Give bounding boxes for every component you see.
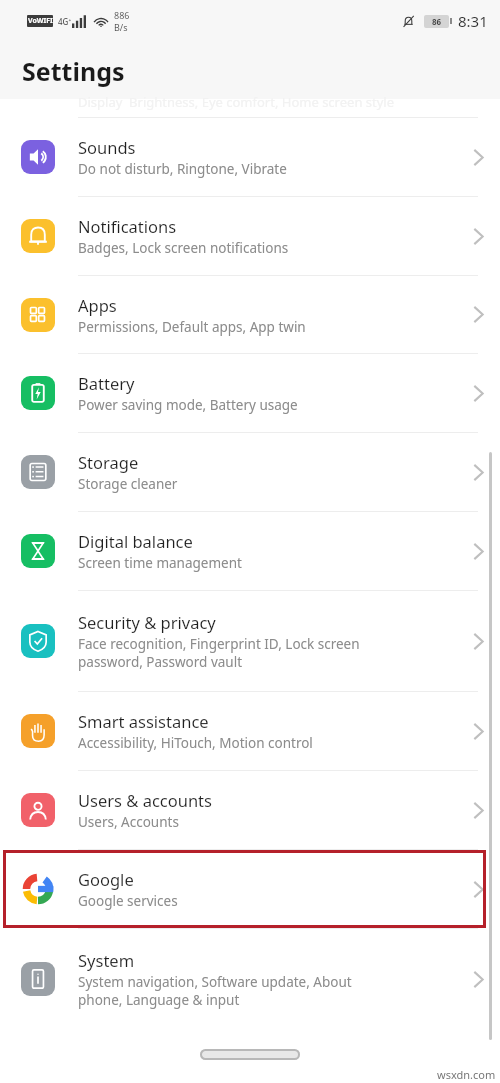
staticText: Apps xyxy=(78,294,117,316)
staticText: Badges, Lock screen notifications xyxy=(78,239,289,257)
staticText: 886 xyxy=(114,9,130,21)
staticText: Notifications xyxy=(78,215,177,237)
staticText: Display Brightness, Eye comfort, Home sc… xyxy=(78,93,395,111)
button[interactable]: Smart assistance xyxy=(0,692,500,770)
staticText: B/s xyxy=(114,21,128,33)
staticText: 8:31 xyxy=(458,11,488,31)
staticText: wsxdn.com xyxy=(437,1067,496,1082)
staticText: Do not disturb, Ringtone, Vibrate xyxy=(78,160,287,178)
staticText: Users, Accounts xyxy=(78,813,179,831)
staticText: Security & privacy xyxy=(78,611,216,633)
staticText: System xyxy=(78,949,135,971)
button[interactable]: Sounds xyxy=(0,118,500,196)
staticText: Storage cleaner xyxy=(78,475,178,493)
staticText: Users & accounts xyxy=(78,789,212,811)
staticText: Sounds xyxy=(78,136,136,158)
staticText: password, Password vault xyxy=(78,653,243,671)
staticText: Face recognition, Fingerprint ID, Lock s… xyxy=(78,635,360,653)
button[interactable]: Google xyxy=(0,850,500,928)
button[interactable]: Digital balance xyxy=(0,512,500,590)
staticText: 86 xyxy=(432,16,442,27)
staticText: 4G⁺ xyxy=(58,16,72,27)
button[interactable]: Storage xyxy=(0,433,500,511)
button[interactable]: System xyxy=(0,929,500,1029)
staticText: VoWIFI xyxy=(28,16,53,26)
staticText: Settings xyxy=(22,54,125,88)
staticText: Permissions, Default apps, App twin xyxy=(78,318,306,336)
staticText: Digital balance xyxy=(78,530,193,552)
button[interactable]: Apps xyxy=(0,276,500,353)
staticText: phone, Language & input xyxy=(78,991,240,1009)
button[interactable]: Notifications xyxy=(0,197,500,275)
staticText: Google xyxy=(78,868,134,890)
staticText: Smart assistance xyxy=(78,710,209,732)
staticText: Storage xyxy=(78,451,139,473)
staticText: Screen time management xyxy=(78,554,242,572)
staticText: Google services xyxy=(78,892,178,910)
button[interactable]: Security & privacy xyxy=(0,591,500,691)
staticText: Power saving mode, Battery usage xyxy=(78,396,298,414)
button[interactable]: Battery xyxy=(0,354,500,432)
button[interactable]: Users & accounts xyxy=(0,771,500,849)
staticText: Battery xyxy=(78,372,135,394)
staticText: System navigation, Software update, Abou… xyxy=(78,973,352,991)
staticText: Accessibility, HiTouch, Motion control xyxy=(78,734,313,752)
